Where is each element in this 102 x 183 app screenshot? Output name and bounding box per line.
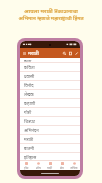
staticText: विनोद: [24, 82, 34, 88]
button[interactable]: Open navigation menu: [22, 51, 27, 56]
button[interactable]: सेव: [56, 161, 68, 170]
staticText: प्रवासी: [24, 73, 35, 79]
button[interactable]: Edit: [74, 51, 79, 56]
staticText: इतिहास: [24, 154, 37, 160]
staticText: यादी: [47, 166, 53, 170]
staticText: कथा: [24, 58, 32, 62]
button[interactable]: इतिहास: [20, 153, 80, 160]
button[interactable]: बातमी: [20, 144, 80, 153]
button[interactable]: अभिनंदन: [20, 126, 80, 135]
staticText: शोध: [36, 166, 41, 170]
button[interactable]: लेखक: [20, 90, 80, 99]
staticText: मराठी: [28, 50, 39, 57]
button[interactable]: होम: [20, 161, 32, 170]
staticText: कविता: [24, 64, 35, 70]
staticText: अधिक: [70, 166, 78, 170]
button[interactable]: कविता: [20, 63, 80, 72]
button[interactable]: प्रवासी: [20, 72, 80, 81]
staticText: अभिमान म्हणजे महाराष्ट्राची हिंमत: [18, 15, 84, 22]
button[interactable]: Search: [62, 51, 67, 56]
staticText: चित्रपट: [24, 118, 36, 124]
button[interactable]: मराठी: [20, 135, 80, 144]
staticText: बातमी: [24, 145, 34, 151]
staticText: गोष्टी: [24, 109, 32, 115]
button[interactable]: कहाणी: [20, 99, 80, 108]
button[interactable]: Bookmarks: [68, 51, 73, 56]
staticText: अभिनंदन: [24, 127, 39, 133]
staticText: होम: [24, 166, 29, 170]
button[interactable]: विनोद: [20, 81, 80, 90]
button[interactable]: कथा: [20, 58, 80, 63]
staticText: मराठी: [24, 136, 34, 142]
staticText: आपला मराठी प्रकाशनाचा: [24, 7, 78, 14]
staticText: कहाणी: [24, 100, 36, 106]
staticText: सेव: [60, 166, 64, 170]
button[interactable]: शोध: [32, 161, 44, 170]
button[interactable]: अधिक: [68, 161, 80, 170]
button[interactable]: गोष्टी: [20, 108, 80, 117]
button[interactable]: यादी: [44, 161, 56, 170]
button[interactable]: चित्रपट: [20, 117, 80, 126]
staticText: लेखक: [24, 91, 34, 97]
